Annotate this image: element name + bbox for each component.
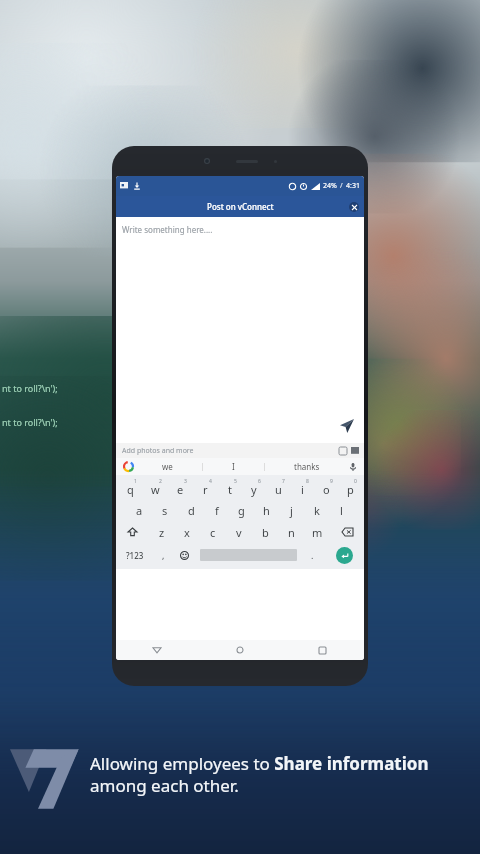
button[interactable]: n <box>278 521 304 543</box>
staticText: nt to roll?\n'); <box>2 382 58 394</box>
button[interactable]: 7 <box>266 477 290 499</box>
button[interactable]: Add photos and more <box>116 443 364 458</box>
button[interactable]: 4 <box>193 477 218 499</box>
button[interactable]: 8 <box>290 477 314 499</box>
staticText: 24% <box>323 181 337 191</box>
staticText: 3 <box>184 478 187 485</box>
staticText: 4:31 <box>346 181 360 191</box>
staticText: s <box>162 503 168 518</box>
staticText: g <box>238 503 245 518</box>
staticText: p <box>347 482 354 497</box>
button[interactable]: 1 <box>118 477 143 499</box>
button[interactable]: s <box>152 499 178 521</box>
button[interactable]: Back <box>116 640 198 660</box>
button[interactable]: 2 <box>143 477 168 499</box>
button[interactable]: Post on vConnect <box>116 196 364 217</box>
button[interactable]: f <box>204 499 229 521</box>
button[interactable]: g <box>229 499 254 521</box>
button[interactable]: we <box>162 461 173 472</box>
staticText: ?123 <box>126 550 144 561</box>
button[interactable]: j <box>279 499 304 521</box>
staticText: Add photos and more <box>122 446 194 456</box>
staticText: Allowing employees to Share information … <box>90 752 429 797</box>
staticText: c <box>210 525 216 540</box>
button[interactable]: m <box>304 521 330 543</box>
button[interactable]: , <box>153 543 173 567</box>
staticText: n <box>288 525 295 540</box>
button[interactable]: b <box>252 521 278 543</box>
staticText: r <box>203 482 208 497</box>
button[interactable] <box>349 463 357 471</box>
staticText: m <box>312 525 323 540</box>
button[interactable]: l <box>329 499 354 521</box>
button[interactable]: x <box>174 521 200 543</box>
staticText: / <box>340 181 343 191</box>
staticText: 4 <box>209 478 212 485</box>
staticText: 2 <box>159 478 162 485</box>
staticText: x <box>184 525 190 540</box>
staticText: z <box>159 525 165 540</box>
button[interactable]: 6 <box>242 477 266 499</box>
button[interactable]: Shift <box>116 521 149 543</box>
staticText: Write something here.... <box>122 224 213 235</box>
staticText: j <box>290 503 293 518</box>
button[interactable]: 3 <box>168 477 193 499</box>
staticText: 8 <box>306 478 309 485</box>
button[interactable]: Emoji <box>173 543 196 567</box>
staticText: e <box>177 482 184 497</box>
staticText: 6 <box>258 478 261 485</box>
button[interactable]: 9 <box>314 477 338 499</box>
button[interactable]: Close <box>349 202 359 212</box>
staticText: 7 <box>282 478 285 485</box>
button[interactable]: Enter <box>336 547 353 564</box>
staticText: b <box>262 525 269 540</box>
staticText: y <box>251 482 257 497</box>
button[interactable]: 5 <box>218 477 242 499</box>
staticText: q <box>127 482 134 497</box>
staticText: , <box>162 549 165 561</box>
button[interactable]: c <box>200 521 226 543</box>
staticText: . <box>311 549 314 561</box>
staticText: 0 <box>354 478 357 485</box>
staticText: d <box>188 503 195 518</box>
staticText: 1 <box>134 478 137 485</box>
staticText: u <box>275 482 282 497</box>
staticText: Post on vConnect <box>207 201 274 212</box>
staticText: v <box>236 525 242 540</box>
button[interactable]: I <box>232 461 235 472</box>
staticText: 5 <box>234 478 237 485</box>
button[interactable]: v <box>226 521 252 543</box>
staticText: k <box>314 503 320 518</box>
button[interactable]: . <box>301 543 324 567</box>
staticText: w <box>151 482 160 497</box>
staticText: f <box>215 503 219 518</box>
button[interactable]: Backspace <box>330 521 364 543</box>
button[interactable]: a <box>126 499 152 521</box>
staticText: o <box>323 482 330 497</box>
button[interactable]: thanks <box>294 461 320 472</box>
button[interactable]: k <box>304 499 329 521</box>
staticText: a <box>136 503 143 518</box>
staticText: 9 <box>330 478 333 485</box>
staticText: t <box>228 482 232 497</box>
button[interactable]: Home <box>198 640 281 660</box>
button[interactable]: 0 <box>338 477 362 499</box>
staticText: nt to roll?\n'); <box>2 416 58 428</box>
button[interactable]: Send <box>338 417 356 435</box>
button[interactable]: ?123 <box>116 543 153 567</box>
staticText: i <box>301 482 304 497</box>
button[interactable]: z <box>149 521 174 543</box>
staticText: h <box>263 503 270 518</box>
button[interactable]: d <box>178 499 204 521</box>
button[interactable]: Recents <box>281 640 364 660</box>
button[interactable]: h <box>254 499 279 521</box>
staticText: l <box>340 503 343 518</box>
